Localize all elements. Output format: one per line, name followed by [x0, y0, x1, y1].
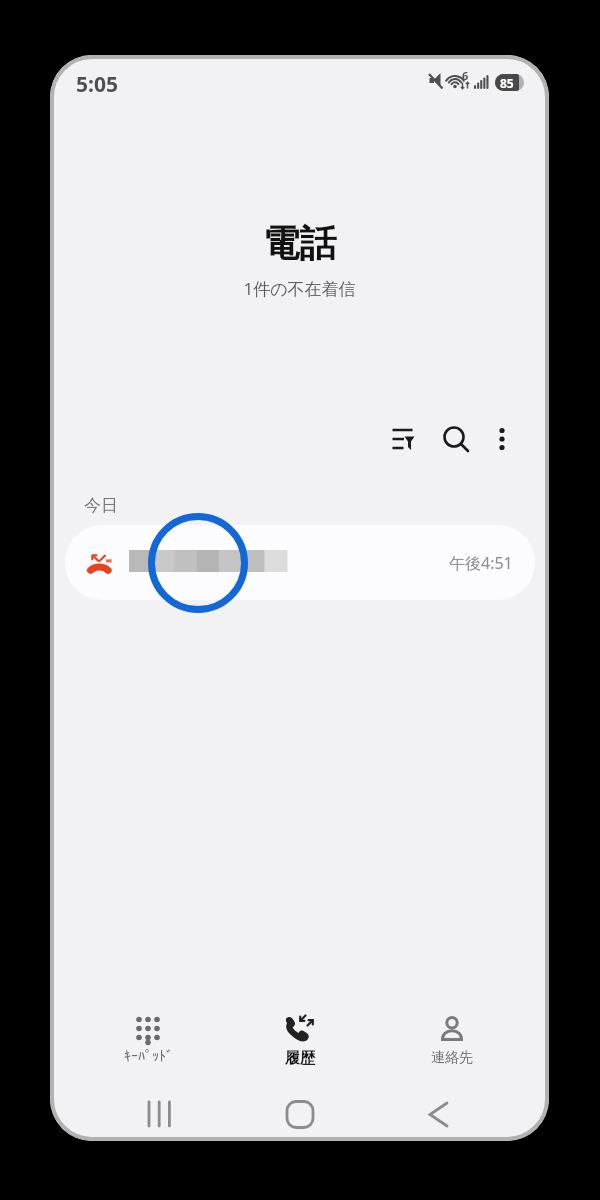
staticText: 電話 — [50, 220, 549, 267]
staticText: 午後4:51 — [449, 552, 513, 574]
staticText: 今日 — [84, 495, 118, 516]
staticText: 6 — [462, 68, 469, 83]
button[interactable] — [382, 417, 427, 462]
staticText: 連絡先 — [431, 1049, 473, 1067]
button[interactable]: 午後4:51 — [65, 525, 535, 600]
button[interactable]: 履歴 — [240, 1008, 360, 1086]
button[interactable] — [414, 1094, 470, 1138]
button[interactable] — [131, 1094, 187, 1138]
button[interactable] — [272, 1094, 328, 1138]
button[interactable]: ｷｰﾊﾟｯﾄﾞ — [88, 1008, 208, 1086]
button[interactable] — [439, 417, 484, 462]
staticText: 履歴 — [285, 1049, 315, 1068]
button[interactable] — [482, 417, 522, 462]
staticText: 85 — [500, 75, 514, 91]
button[interactable]: 連絡先 — [392, 1008, 512, 1086]
staticText: 1件の不在着信 — [50, 277, 549, 300]
staticText: ｷｰﾊﾟｯﾄﾞ — [124, 1049, 173, 1063]
staticText: 5:05 — [76, 70, 118, 99]
